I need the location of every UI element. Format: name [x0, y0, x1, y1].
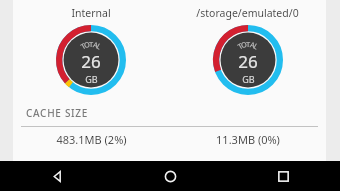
staticText: 483.1MB (2%)	[56, 132, 127, 147]
button[interactable]: T	[169, 25, 326, 95]
staticText: L	[95, 41, 104, 52]
staticText: GB	[242, 73, 255, 85]
staticText: CACHE SIZE	[26, 106, 89, 120]
staticText: 11.3MB (0%)	[216, 132, 280, 147]
staticText: Internal	[71, 6, 111, 20]
staticText: T	[246, 39, 251, 49]
staticText: A	[92, 39, 99, 50]
staticText: T	[79, 40, 88, 51]
staticText: 26	[81, 50, 101, 73]
staticText: 26	[238, 50, 258, 73]
staticText: O	[240, 39, 248, 50]
staticText: GB	[85, 73, 98, 85]
staticText: A	[249, 39, 256, 50]
button[interactable]: Home	[114, 161, 227, 191]
staticText: T	[89, 39, 94, 49]
staticText: /storage/emulated/0	[196, 6, 299, 20]
staticText: T	[236, 40, 245, 51]
staticText: L	[252, 41, 261, 52]
button[interactable]: Recent apps	[227, 161, 340, 191]
button[interactable]: Back	[0, 161, 114, 191]
staticText: O	[83, 39, 91, 50]
button[interactable]: T	[13, 25, 169, 95]
